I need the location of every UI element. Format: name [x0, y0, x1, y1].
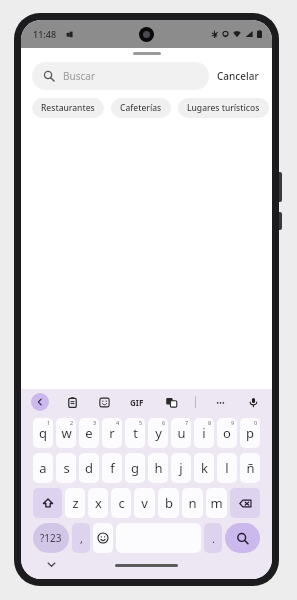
staticText: u	[177, 424, 186, 442]
staticText: 0	[254, 419, 258, 426]
button[interactable]: q	[33, 418, 53, 448]
button[interactable]: Search	[225, 523, 260, 553]
button[interactable]: z	[65, 488, 85, 518]
button[interactable]: Lugares turísticos	[178, 98, 269, 118]
staticText: g	[131, 459, 139, 477]
button[interactable]: v	[134, 488, 155, 518]
staticText: v	[141, 494, 148, 512]
button[interactable]: s	[56, 453, 76, 483]
button[interactable]: Cafeterías	[111, 98, 171, 118]
button[interactable]: Buscar	[32, 62, 209, 90]
button[interactable]: Translate	[162, 393, 180, 411]
staticText: ñ	[246, 459, 255, 477]
staticText: 9	[231, 419, 235, 426]
button[interactable]: More options	[211, 393, 229, 411]
button[interactable]: r	[102, 418, 122, 448]
staticText: 4	[116, 419, 120, 426]
staticText: Lugares turísticos	[187, 102, 260, 114]
staticText: t	[133, 424, 138, 442]
button[interactable]: g	[125, 453, 145, 483]
staticText: z	[72, 494, 79, 512]
staticText: y	[155, 424, 162, 442]
staticText: s	[63, 459, 70, 477]
button[interactable]: w	[56, 418, 76, 448]
button[interactable]: h	[148, 453, 168, 483]
button[interactable]: Expand toolbar	[31, 393, 49, 411]
button[interactable]: ?123	[33, 523, 69, 553]
staticText: b	[165, 494, 173, 512]
button[interactable]: f	[102, 453, 122, 483]
staticText: .	[212, 531, 215, 546]
button[interactable]: Cancelar	[209, 65, 261, 87]
staticText: q	[39, 424, 47, 442]
button[interactable]: GIF	[127, 392, 147, 412]
staticText: Cancelar	[217, 69, 259, 83]
button[interactable]: a	[33, 453, 53, 483]
staticText: n	[188, 494, 197, 512]
button[interactable]: b	[158, 488, 179, 518]
button[interactable]: d	[79, 453, 99, 483]
button[interactable]: Emoji	[93, 523, 113, 553]
button[interactable]: k	[194, 453, 214, 483]
staticText: Buscar	[63, 69, 96, 83]
button[interactable]: Voice input	[244, 393, 262, 411]
button[interactable]: .	[204, 523, 222, 553]
staticText: Restaurantes	[41, 102, 95, 114]
button[interactable]: c	[111, 488, 131, 518]
staticText: 7	[185, 419, 189, 426]
staticText: m	[210, 494, 223, 512]
staticText: k	[201, 459, 208, 477]
button[interactable]: Restaurantes	[32, 98, 104, 118]
button[interactable]: Stickers	[95, 393, 113, 411]
staticText: d	[85, 459, 93, 477]
staticText: e	[85, 424, 93, 442]
staticText: ,	[80, 531, 83, 546]
button[interactable]: u	[171, 418, 191, 448]
button[interactable]: ,	[72, 523, 90, 553]
staticText: Cafeterías	[120, 102, 162, 114]
staticText: l	[225, 459, 229, 477]
button[interactable]: m	[206, 488, 227, 518]
staticText: a	[39, 459, 47, 477]
staticText: f	[110, 459, 115, 477]
button[interactable]: o	[217, 418, 237, 448]
staticText: 1	[47, 419, 51, 426]
button[interactable]: i	[194, 418, 214, 448]
staticText: r	[109, 424, 115, 442]
button[interactable]: n	[182, 488, 203, 518]
button[interactable]: j	[171, 453, 191, 483]
button[interactable]: Shift	[33, 488, 62, 518]
staticText: c	[118, 494, 125, 512]
staticText: p	[246, 424, 254, 442]
button[interactable]: y	[148, 418, 168, 448]
staticText: 5	[139, 419, 143, 426]
staticText: i	[202, 424, 206, 442]
button[interactable]: t	[125, 418, 145, 448]
button[interactable]: l	[217, 453, 237, 483]
button[interactable]: e	[79, 418, 99, 448]
button[interactable]: p	[240, 418, 260, 448]
button[interactable]: x	[88, 488, 108, 518]
staticText: 2	[70, 419, 74, 426]
staticText: ?123	[40, 531, 62, 545]
button[interactable]: ñ	[240, 453, 260, 483]
staticText: 11:48	[33, 28, 57, 40]
staticText: GIF	[130, 397, 144, 408]
staticText: 3	[93, 419, 97, 426]
button[interactable]: Backspace	[230, 488, 260, 518]
staticText: o	[223, 424, 231, 442]
staticText: 8	[208, 419, 212, 426]
button[interactable]: Clipboard	[63, 393, 81, 411]
staticText: x	[95, 494, 102, 512]
staticText: 6	[162, 419, 166, 426]
staticText: j	[179, 459, 183, 477]
staticText: w	[61, 424, 72, 442]
staticText: h	[154, 459, 163, 477]
